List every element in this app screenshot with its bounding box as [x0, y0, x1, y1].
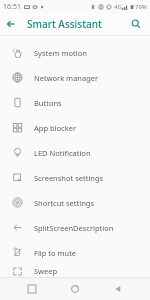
button[interactable]: LED Notification: [0, 140, 150, 165]
button[interactable]: Buttons: [0, 90, 150, 115]
staticText: System motion: [34, 48, 87, 58]
button[interactable]: Screenshot settings: [0, 165, 150, 190]
staticText: SplitScreenDescription: [34, 223, 114, 233]
button[interactable]: Recents: [21, 278, 43, 300]
button[interactable]: Back: [0, 13, 22, 35]
button[interactable]: Back: [107, 278, 129, 300]
button[interactable]: Shortcut settings: [0, 190, 150, 215]
button[interactable]: Network manager: [0, 65, 150, 90]
button[interactable]: SplitScreenDescription: [0, 215, 150, 240]
staticText: Shortcut settings: [34, 198, 94, 208]
staticText: Smart Assistant: [27, 17, 102, 31]
staticText: 4G: [114, 3, 122, 11]
button[interactable]: Sweep: [0, 265, 150, 277]
staticText: LED Notification: [34, 148, 91, 158]
button[interactable]: System motion: [0, 40, 150, 65]
staticText: 16:51: [3, 2, 21, 12]
staticText: Flip to mute: [34, 248, 77, 258]
button[interactable]: App blocker: [0, 115, 150, 140]
staticText: 76%: [135, 3, 147, 11]
button[interactable]: Home: [64, 278, 86, 300]
staticText: Network manager: [34, 73, 99, 83]
button[interactable]: Flip to mute: [0, 240, 150, 265]
staticText: Buttons: [34, 98, 62, 108]
staticText: Screenshot settings: [34, 173, 104, 183]
staticText: Sweep: [34, 266, 58, 276]
button[interactable]: Search: [125, 13, 147, 35]
staticText: App blocker: [34, 123, 76, 133]
